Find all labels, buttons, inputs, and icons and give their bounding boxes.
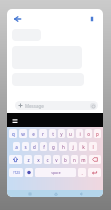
button[interactable]: r — [39, 129, 47, 138]
button[interactable]: o — [85, 129, 92, 138]
staticText: r — [42, 131, 44, 137]
button[interactable]: m — [80, 155, 87, 164]
button[interactable]: h — [59, 142, 67, 151]
staticText: s — [24, 144, 27, 150]
button[interactable]: l — [89, 142, 97, 151]
button[interactable]: b — [62, 155, 69, 164]
button[interactable]: u — [67, 129, 74, 138]
button[interactable]: p — [94, 129, 101, 138]
staticText: n — [73, 157, 76, 163]
button[interactable]: y — [58, 129, 65, 138]
button[interactable]: ?123 — [9, 168, 23, 177]
staticText: u — [69, 131, 72, 137]
button[interactable]: Shift — [9, 155, 22, 164]
staticText: Message — [25, 103, 44, 109]
button[interactable]: Emoji — [25, 168, 33, 177]
staticText: w — [21, 131, 25, 137]
button[interactable]: w — [19, 129, 27, 138]
staticText: c — [46, 157, 49, 163]
button[interactable]: Back — [77, 190, 84, 197]
staticText: k — [82, 144, 85, 150]
button[interactable]: x — [34, 155, 42, 164]
button[interactable]: Backspace — [89, 155, 101, 164]
button[interactable]: f — [40, 142, 47, 151]
button[interactable]: c — [44, 155, 51, 164]
staticText: ?123 — [13, 171, 20, 175]
button[interactable]: Recents — [26, 190, 33, 197]
button[interactable]: a — [13, 142, 20, 151]
button[interactable]: j — [69, 142, 77, 151]
staticText: h — [62, 144, 65, 150]
staticText: t — [52, 131, 54, 137]
button[interactable]: t — [49, 129, 56, 138]
button[interactable]: v — [53, 155, 60, 164]
staticText: z — [27, 157, 30, 163]
staticText: j — [72, 144, 74, 150]
staticText: p — [96, 131, 99, 137]
staticText: x — [37, 157, 40, 163]
button[interactable]: More options — [86, 13, 98, 25]
button[interactable]: Back — [10, 12, 23, 25]
button[interactable]: i — [76, 129, 83, 138]
staticText: g — [52, 144, 55, 150]
button[interactable]: s — [22, 142, 29, 151]
staticText: i — [79, 131, 81, 137]
staticText: d — [33, 144, 36, 150]
staticText: e — [32, 131, 35, 137]
staticText: v — [55, 157, 58, 163]
staticText: q — [12, 131, 15, 137]
button[interactable]: e — [29, 129, 37, 138]
button[interactable]: Home — [52, 190, 59, 197]
button[interactable]: . — [78, 168, 86, 177]
staticText: f — [43, 144, 45, 150]
button[interactable]: k — [79, 142, 87, 151]
button[interactable]: Message — [15, 101, 98, 110]
staticText: a — [15, 144, 18, 150]
button[interactable]: z — [24, 155, 32, 164]
button[interactable]: g — [49, 142, 57, 151]
staticText: l — [92, 144, 94, 150]
button[interactable]: q — [9, 129, 17, 138]
button[interactable]: space — [35, 168, 76, 177]
staticText: space — [51, 170, 61, 175]
button[interactable]: n — [71, 155, 78, 164]
staticText: b — [64, 157, 67, 163]
button[interactable]: Clipboard — [10, 116, 19, 125]
staticText: . — [81, 170, 83, 176]
staticText: m — [81, 157, 86, 163]
staticText: o — [87, 131, 90, 137]
button[interactable]: d — [31, 142, 38, 151]
staticText: y — [60, 131, 63, 137]
button[interactable]: Enter — [88, 168, 101, 177]
